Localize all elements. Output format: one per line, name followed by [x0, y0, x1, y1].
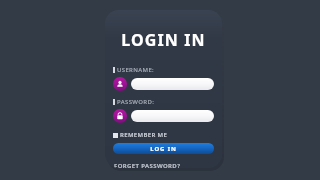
- staticText: LOG IN: [150, 145, 177, 153]
- button[interactable]: FORGET PASSWORD?: [114, 162, 181, 168]
- button[interactable]: REMEMBER ME: [113, 131, 168, 139]
- staticText: PASSWORD:: [117, 98, 155, 106]
- button[interactable]: [131, 110, 214, 122]
- button[interactable]: Username: [113, 77, 127, 91]
- button[interactable]: LOG IN: [113, 143, 214, 154]
- staticText: LOGIN IN: [113, 29, 214, 51]
- staticText: REMEMBER ME: [120, 131, 168, 139]
- button[interactable]: Password: [113, 109, 127, 123]
- staticText: FORGET PASSWORD?: [114, 162, 181, 168]
- button[interactable]: [131, 78, 214, 90]
- staticText: USERNAME:: [117, 66, 155, 74]
